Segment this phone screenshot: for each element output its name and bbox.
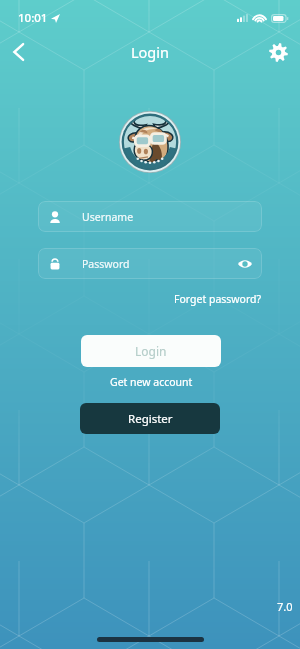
button[interactable]: Login bbox=[81, 335, 221, 367]
staticText: Get new account bbox=[110, 375, 193, 389]
staticText: Login bbox=[131, 42, 169, 62]
button[interactable]: Register bbox=[80, 403, 220, 434]
button[interactable]: Password bbox=[38, 248, 262, 279]
staticText: Register bbox=[128, 411, 173, 427]
button[interactable]: Settings bbox=[260, 34, 296, 70]
staticText: 7.0 bbox=[277, 599, 293, 614]
button[interactable]: Username bbox=[38, 201, 262, 232]
button[interactable]: Get new account bbox=[81, 373, 221, 390]
staticText: Username bbox=[82, 210, 134, 224]
button[interactable]: Back bbox=[0, 34, 36, 70]
staticText: 10:01 bbox=[18, 10, 48, 26]
button[interactable]: Forget password? bbox=[160, 291, 262, 307]
staticText: Password bbox=[82, 257, 130, 271]
staticText: Login bbox=[135, 343, 167, 359]
button[interactable]: Show password bbox=[236, 255, 254, 273]
staticText: Forget password? bbox=[174, 292, 262, 306]
